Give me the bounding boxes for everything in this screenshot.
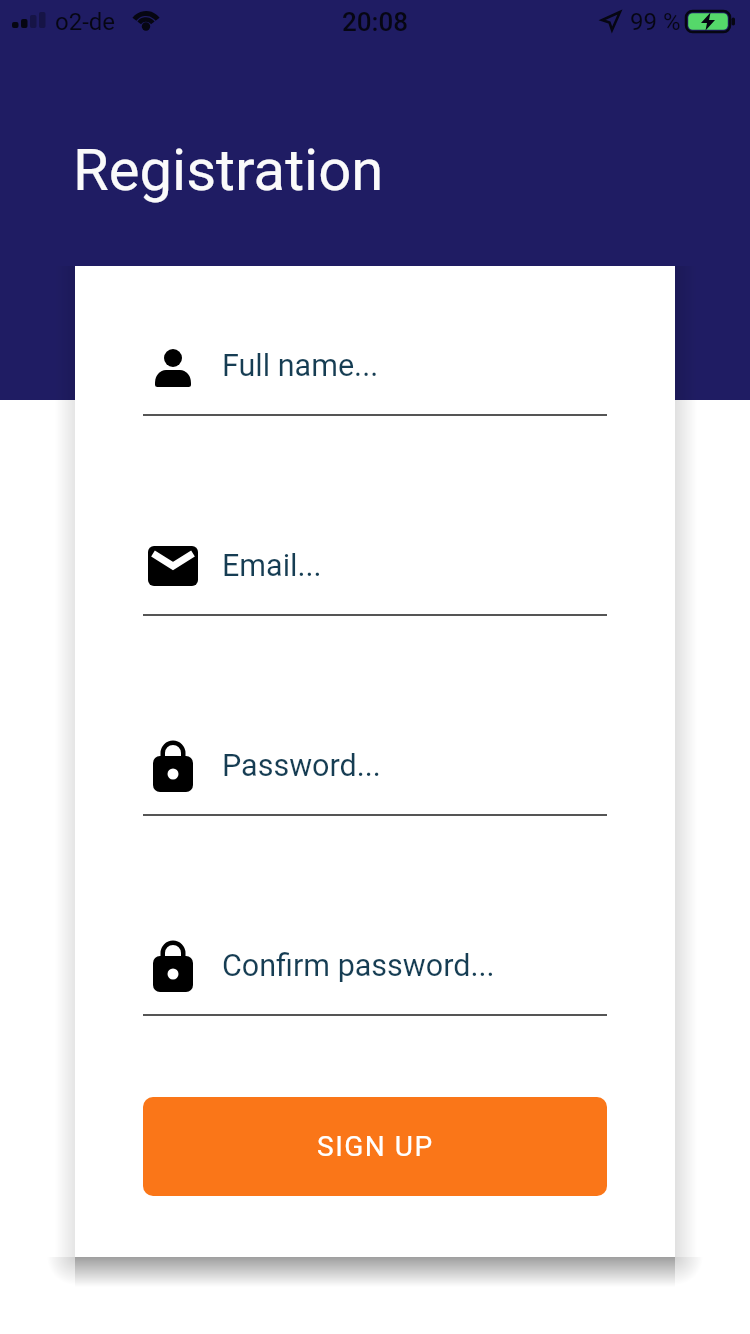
button[interactable]: SIGN UP bbox=[143, 1097, 607, 1196]
staticText: 99 % bbox=[630, 8, 681, 36]
button[interactable]: Email... bbox=[143, 516, 607, 616]
button[interactable]: Confirm password... bbox=[143, 916, 607, 1016]
staticText: Registration bbox=[73, 136, 384, 204]
staticText: Password... bbox=[222, 748, 381, 784]
staticText: Email... bbox=[222, 548, 322, 584]
staticText: Confirm password... bbox=[222, 948, 495, 984]
button[interactable]: Full name... bbox=[143, 316, 607, 416]
staticText: SIGN UP bbox=[317, 1130, 434, 1163]
staticText: Full name... bbox=[222, 348, 379, 384]
button[interactable]: Password... bbox=[143, 716, 607, 816]
staticText: o2-de bbox=[55, 8, 116, 36]
staticText: 20:08 bbox=[342, 7, 409, 37]
